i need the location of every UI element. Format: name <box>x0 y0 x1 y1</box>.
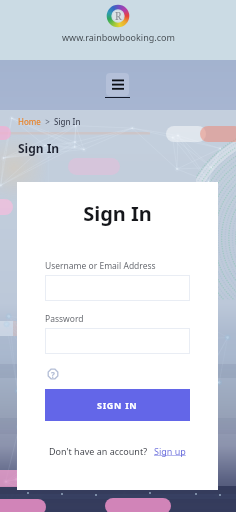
staticText: ? <box>51 369 55 380</box>
staticText: Password <box>45 313 84 325</box>
staticText: R <box>115 9 122 23</box>
button[interactable]: Home <box>18 116 41 127</box>
other: Rainbow logo <box>108 6 128 26</box>
button[interactable] <box>45 275 190 301</box>
button[interactable]: SIGN IN <box>45 389 190 421</box>
button[interactable]: Sign up <box>154 445 186 457</box>
button[interactable]: Menu <box>106 73 129 96</box>
staticText: SIGN IN <box>97 399 138 411</box>
button[interactable]: Help <box>47 368 59 380</box>
staticText: Don't have an account? <box>49 445 148 457</box>
staticText: Sign In <box>54 116 81 127</box>
button[interactable] <box>45 328 190 354</box>
staticText: www.rainbowbooking.com <box>62 31 175 43</box>
staticText: Username or Email Address <box>45 260 156 272</box>
staticText: > <box>41 116 54 127</box>
staticText: Sign In <box>18 140 60 156</box>
staticText: Sign In <box>17 200 218 227</box>
